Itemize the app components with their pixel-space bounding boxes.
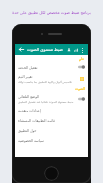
button[interactable]: More options [79, 47, 85, 53]
staticText: تفعيل الخدمة [18, 65, 78, 70]
staticText: حول التطبيق [18, 128, 37, 133]
button[interactable]: Account [65, 46, 72, 53]
button[interactable]: الوضع التلقائي [15, 92, 88, 105]
staticText: سياسة الخصوصية [18, 138, 44, 143]
button[interactable]: سياسة الخصوصية [15, 135, 88, 145]
button[interactable]: تفعيل الخدمة [15, 62, 88, 72]
staticText: إعدادات متقدمة [18, 108, 41, 113]
button[interactable]: حول التطبيق [15, 125, 88, 135]
button[interactable]: Back [18, 46, 25, 53]
button[interactable]: Toggle [78, 97, 85, 101]
button[interactable]: إعدادات متقدمة [15, 105, 88, 115]
button[interactable]: Toggle [78, 65, 85, 69]
staticText: قائمة التطبيقات المستثناة [18, 118, 55, 123]
staticText: عام [79, 57, 85, 61]
staticText: ضبط مستوى الصوت [27, 47, 65, 53]
button[interactable]: Statistics [72, 46, 79, 53]
staticText: تغيير الثيم [18, 74, 33, 79]
staticText: تخصيص ألوان واجهة التطبيق بما يناسب ذوقك [18, 80, 72, 84]
staticText: ضبط مستوى الصوت تلقائيا عند تشغيل التطبي… [18, 100, 74, 104]
staticText: الصوت [75, 87, 85, 91]
button[interactable]: قائمة التطبيقات المستثناة [15, 115, 88, 125]
staticText: برنامج ضبط صوت مخصص لكل تطبيق على حدة [12, 10, 91, 15]
button[interactable]: تغيير الثيم [15, 72, 88, 85]
staticText: الوضع التلقائي [18, 94, 40, 99]
